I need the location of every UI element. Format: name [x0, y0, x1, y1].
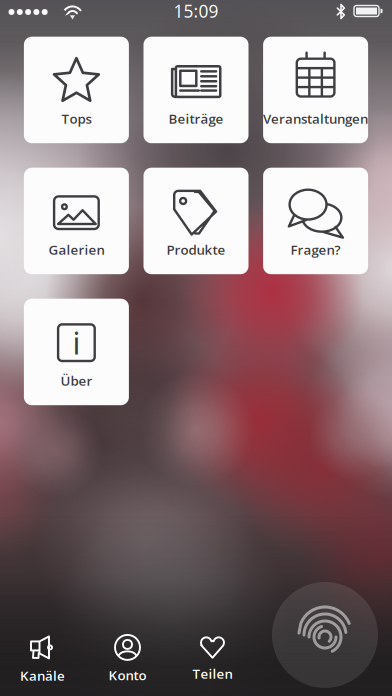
staticText: 15:09 [173, 0, 218, 22]
staticText: Tops [61, 109, 91, 128]
staticText: Teilen [192, 664, 232, 683]
button[interactable]: Teilen [170, 630, 255, 688]
button[interactable]: Touch ID [272, 582, 378, 688]
staticText: Produkte [166, 240, 225, 259]
button[interactable]: Fragen? [263, 168, 368, 274]
button[interactable]: Produkte [143, 168, 248, 274]
button[interactable]: Beiträge [143, 37, 248, 143]
staticText: Konto [108, 666, 146, 684]
button[interactable]: Galerien [24, 168, 129, 274]
button[interactable]: i [24, 299, 129, 405]
staticText: Beiträge [168, 109, 223, 128]
staticText: i [72, 322, 80, 363]
staticText: Über [60, 371, 92, 390]
staticText: Galerien [48, 240, 104, 259]
button[interactable]: Konto [85, 630, 170, 688]
staticText: Kanäle [20, 666, 65, 685]
button[interactable]: Kanäle [0, 630, 85, 688]
button[interactable]: Tops [24, 37, 129, 143]
button[interactable]: Veranstaltungen [263, 37, 368, 143]
staticText: Veranstaltungen [263, 109, 368, 128]
staticText: Fragen? [291, 240, 341, 259]
